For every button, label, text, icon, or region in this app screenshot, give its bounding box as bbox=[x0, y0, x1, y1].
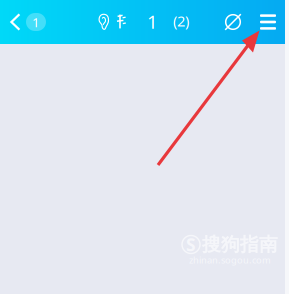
staticText: S bbox=[186, 233, 196, 256]
staticText: 1 bbox=[147, 9, 158, 34]
staticText: 搜狗指南 bbox=[202, 233, 278, 256]
button[interactable]: Menu bbox=[252, 0, 284, 44]
staticText: zhinan.sogou.com bbox=[189, 254, 271, 266]
staticText: (2) bbox=[173, 11, 189, 30]
staticText: 1 bbox=[32, 13, 40, 31]
button[interactable]: Mute bbox=[218, 0, 248, 44]
button[interactable]: Back bbox=[0, 0, 52, 44]
